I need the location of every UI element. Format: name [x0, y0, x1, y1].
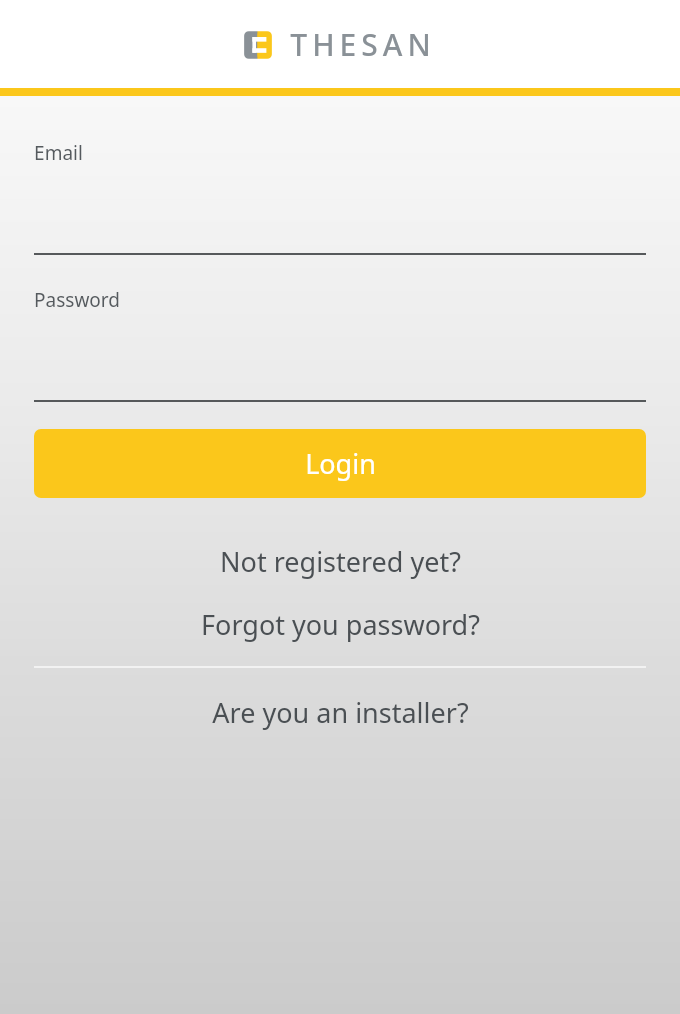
staticText: Not registered yet?	[220, 543, 461, 580]
button[interactable]: Forgot you password?	[0, 596, 680, 652]
other: Thesan logo	[244, 31, 272, 59]
staticText: Are you an installer?	[212, 694, 469, 731]
staticText: Password	[34, 287, 120, 313]
button[interactable]: Are you an installer?	[0, 684, 680, 740]
staticText: Login	[305, 445, 376, 482]
button[interactable]: Login	[34, 429, 646, 498]
staticText: Forgot you password?	[201, 606, 480, 643]
staticText: Email	[34, 140, 83, 166]
button[interactable]: Not registered yet?	[0, 533, 680, 589]
staticText: THESAN	[290, 24, 436, 65]
